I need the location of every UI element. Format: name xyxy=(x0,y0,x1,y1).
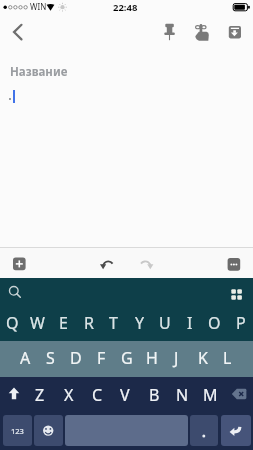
button[interactable] xyxy=(226,20,250,45)
staticText: U xyxy=(159,312,171,334)
button[interactable]: N xyxy=(168,376,196,413)
button[interactable]: H xyxy=(139,340,164,376)
staticText: Название xyxy=(10,64,68,80)
button[interactable]: K xyxy=(190,340,215,376)
staticText: J xyxy=(174,347,179,369)
staticText: Y xyxy=(135,312,145,334)
button[interactable]: O xyxy=(202,305,227,340)
staticText: V xyxy=(120,384,130,406)
button[interactable]: F xyxy=(89,340,114,376)
button[interactable]: R xyxy=(76,305,101,340)
staticText: C xyxy=(92,384,103,406)
staticText: P xyxy=(236,312,246,334)
staticText: N xyxy=(176,384,189,406)
staticText: K xyxy=(198,347,208,369)
button[interactable]: B xyxy=(140,376,168,413)
button[interactable] xyxy=(0,279,28,306)
button[interactable] xyxy=(34,415,63,446)
button[interactable]: M xyxy=(196,376,224,413)
button[interactable]: Z xyxy=(26,376,54,413)
button[interactable]: 123 xyxy=(3,415,32,446)
button[interactable] xyxy=(9,254,29,274)
staticText: L xyxy=(223,347,232,369)
staticText: T xyxy=(109,312,118,334)
staticText: WIN xyxy=(30,1,47,12)
button[interactable]: A xyxy=(13,340,38,376)
staticText: Q xyxy=(6,312,19,334)
button[interactable]: Y xyxy=(127,305,152,340)
button[interactable]: C xyxy=(83,376,111,413)
button[interactable] xyxy=(224,377,253,413)
staticText: X xyxy=(64,384,74,406)
button[interactable]: U xyxy=(152,305,177,340)
button[interactable]: W xyxy=(25,305,50,340)
staticText: I xyxy=(187,312,193,334)
button[interactable]: E xyxy=(51,305,76,340)
staticText: B xyxy=(149,384,160,406)
button[interactable] xyxy=(6,20,28,44)
button[interactable] xyxy=(190,415,218,446)
button[interactable] xyxy=(224,279,252,306)
staticText: F xyxy=(97,347,106,369)
button[interactable] xyxy=(221,415,251,446)
button[interactable]: J xyxy=(164,340,189,376)
button[interactable]: X xyxy=(55,376,83,413)
staticText: O xyxy=(208,312,221,334)
button[interactable]: L xyxy=(215,340,240,376)
button[interactable]: D xyxy=(63,340,88,376)
button[interactable] xyxy=(0,377,30,413)
button[interactable] xyxy=(136,256,156,274)
staticText: W xyxy=(30,312,45,334)
staticText: D xyxy=(70,347,82,369)
staticText: S xyxy=(46,347,55,369)
button[interactable]: I xyxy=(177,305,202,340)
button[interactable]: P xyxy=(228,305,253,340)
button[interactable]: T xyxy=(101,305,126,340)
button[interactable]: V xyxy=(111,376,139,413)
staticText: M xyxy=(203,384,218,406)
button[interactable] xyxy=(159,20,180,45)
staticText: E xyxy=(59,312,68,334)
staticText: Z xyxy=(35,384,45,406)
staticText: 22:48 xyxy=(113,1,138,14)
staticText: 123 xyxy=(11,426,24,436)
button[interactable] xyxy=(193,20,215,45)
button[interactable]: S xyxy=(38,340,63,376)
staticText: G xyxy=(121,347,133,369)
button[interactable]: G xyxy=(114,340,139,376)
staticText: A xyxy=(20,347,31,369)
button[interactable] xyxy=(98,256,118,274)
staticText: H xyxy=(146,347,158,369)
button[interactable] xyxy=(224,255,244,274)
button[interactable]: Q xyxy=(0,305,25,340)
staticText: R xyxy=(84,312,94,334)
